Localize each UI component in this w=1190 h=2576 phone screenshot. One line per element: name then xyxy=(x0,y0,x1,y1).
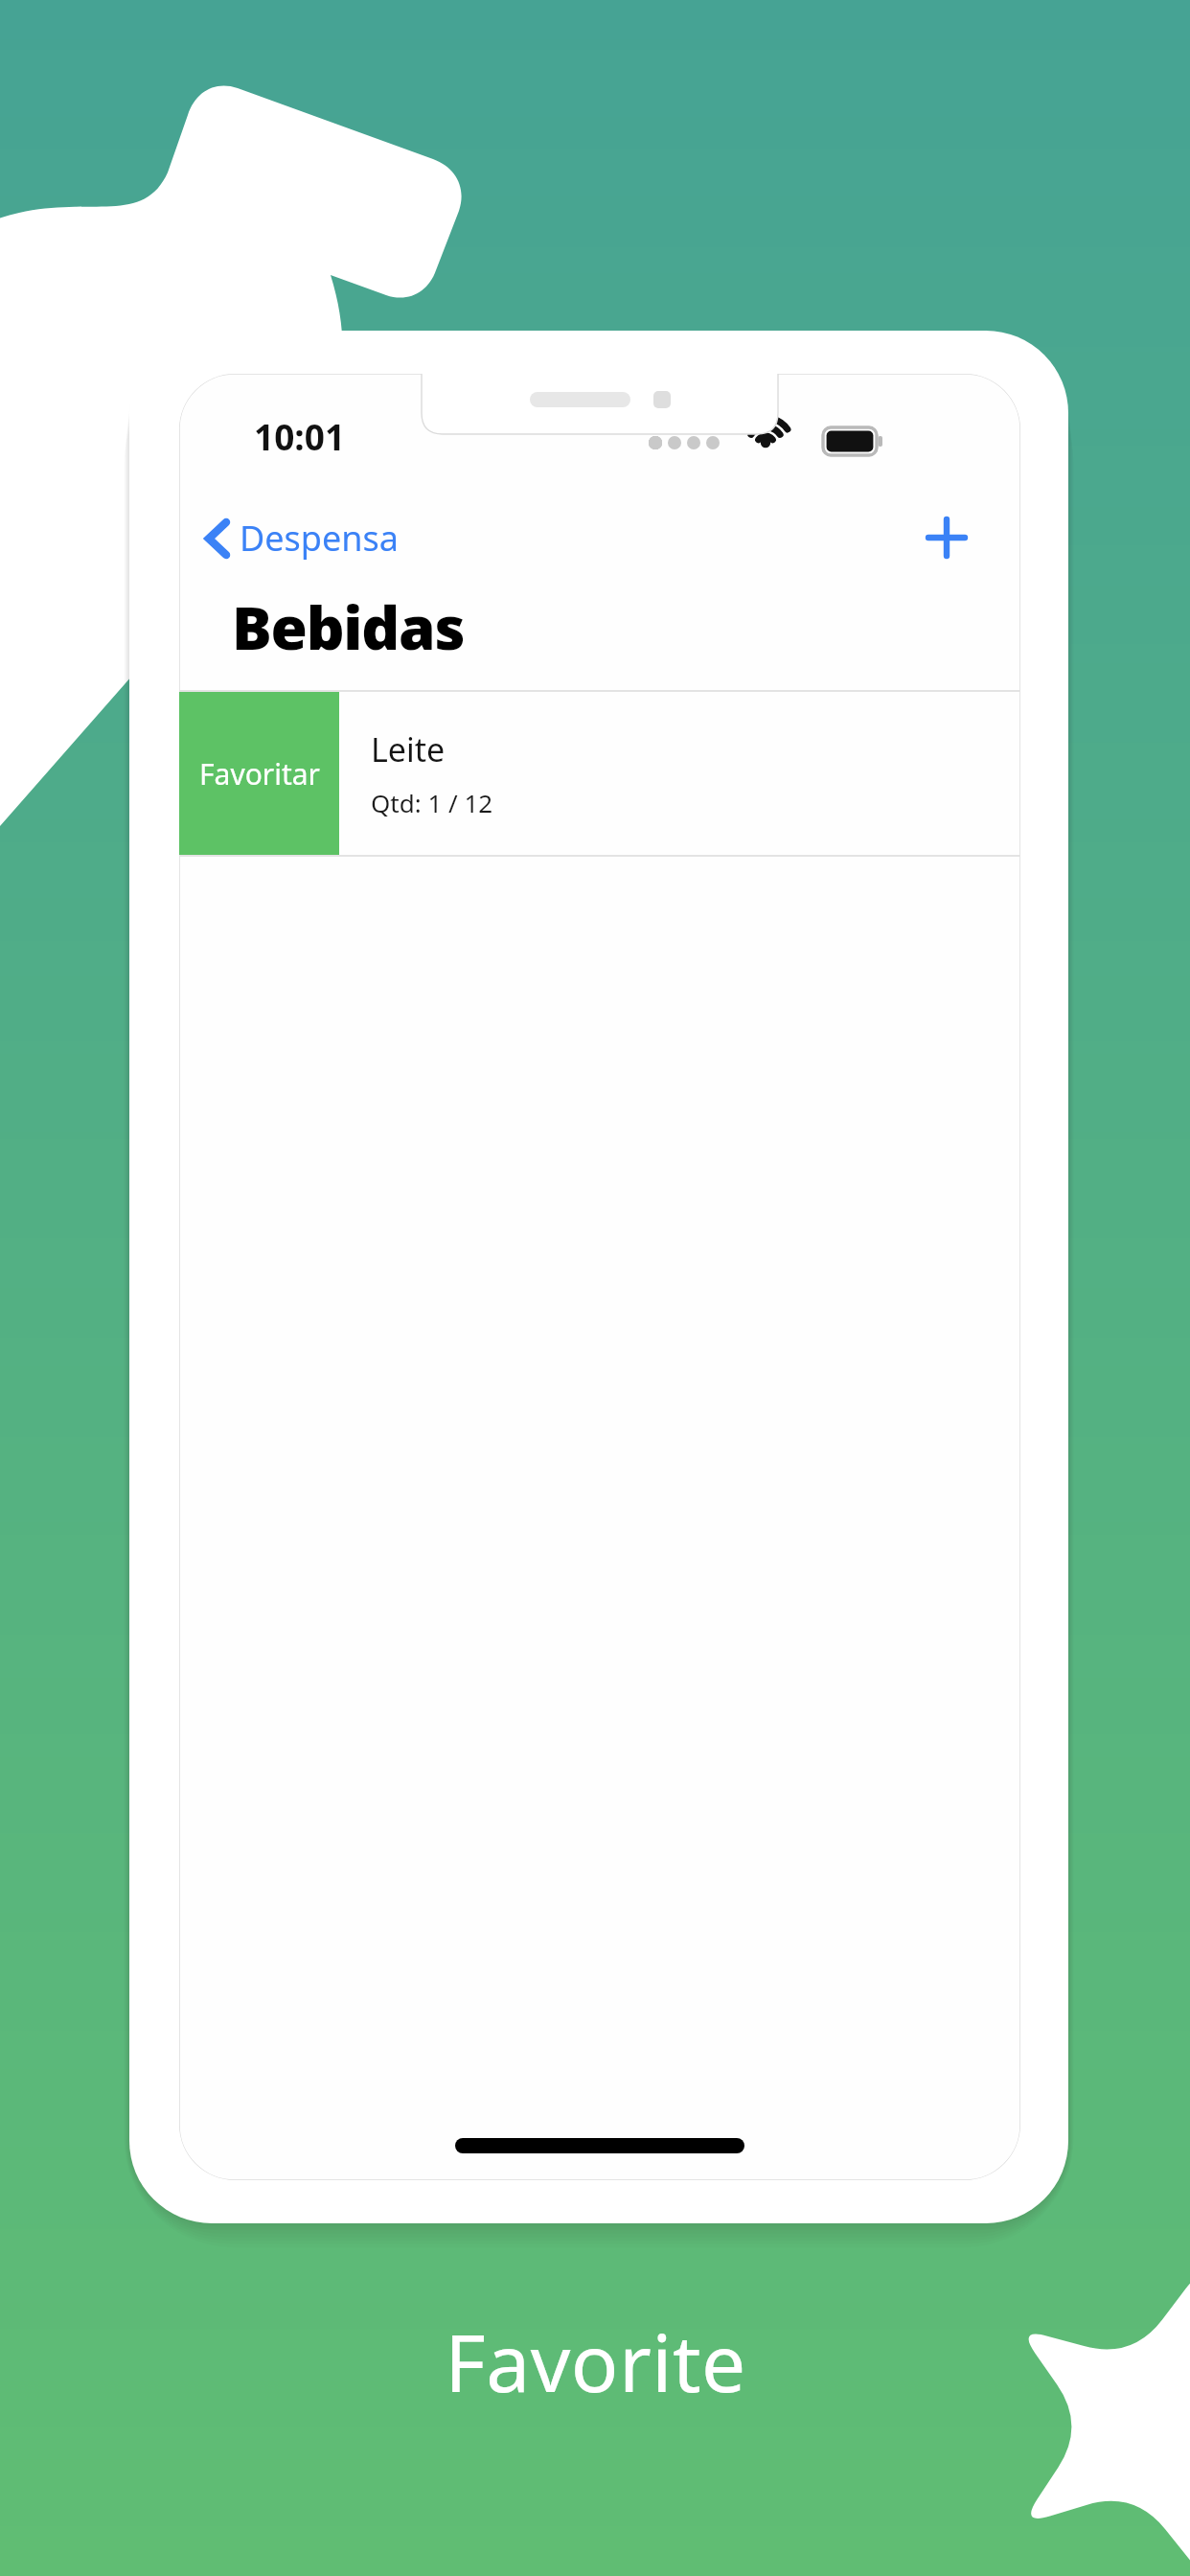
button[interactable]: Adicionar xyxy=(907,498,986,577)
staticText: Bebidas xyxy=(232,586,465,667)
staticText: Despensa xyxy=(240,515,399,562)
staticText: Favoritar xyxy=(199,754,320,793)
button[interactable]: Despensa xyxy=(196,507,406,569)
button[interactable]: Favoritar xyxy=(179,692,1020,855)
staticText: Leite xyxy=(371,727,446,771)
button[interactable]: Favoritar xyxy=(179,692,339,855)
staticText: 10:01 xyxy=(254,412,346,460)
staticText: Qtd: 1 / 12 xyxy=(371,786,493,819)
staticText: Favorite xyxy=(445,2308,746,2415)
